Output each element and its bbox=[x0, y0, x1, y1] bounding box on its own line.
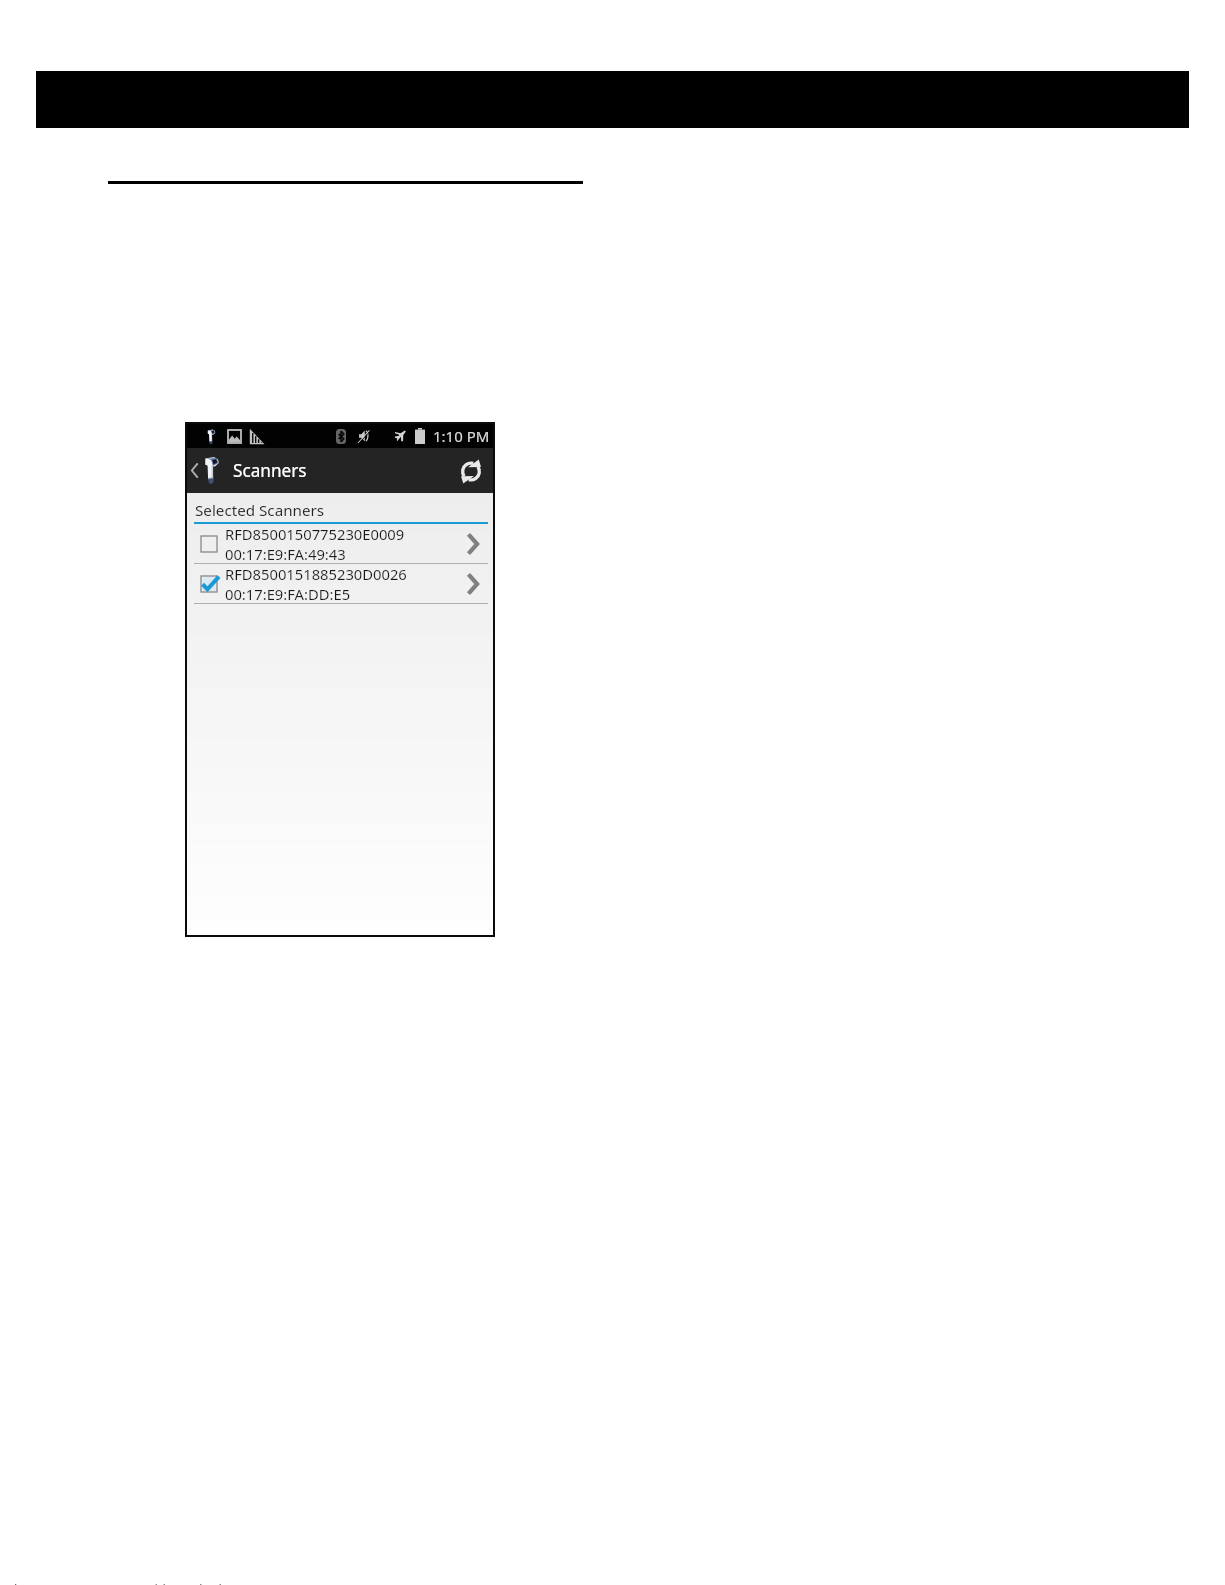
staticText: Selected Scanners bbox=[195, 500, 325, 521]
staticText: 1:10 PM bbox=[433, 426, 490, 446]
button[interactable]: Back bbox=[187, 456, 222, 485]
staticText: Scanners bbox=[233, 459, 307, 482]
button[interactable]: RFD8500151885230D0026 bbox=[187, 564, 493, 603]
staticText: RFD8500150775230E0009 bbox=[225, 524, 405, 544]
staticText: Where to use scanners without doubt bbox=[2, 1580, 232, 1585]
staticText: 00:17:E9:FA:49:43 bbox=[225, 544, 346, 563]
button[interactable]: Refresh bbox=[449, 449, 493, 493]
button[interactable]: RFD8500150775230E0009 bbox=[187, 524, 493, 563]
staticText: 00:17:E9:FA:DD:E5 bbox=[225, 584, 351, 603]
staticText: RFD8500151885230D0026 bbox=[225, 564, 407, 584]
